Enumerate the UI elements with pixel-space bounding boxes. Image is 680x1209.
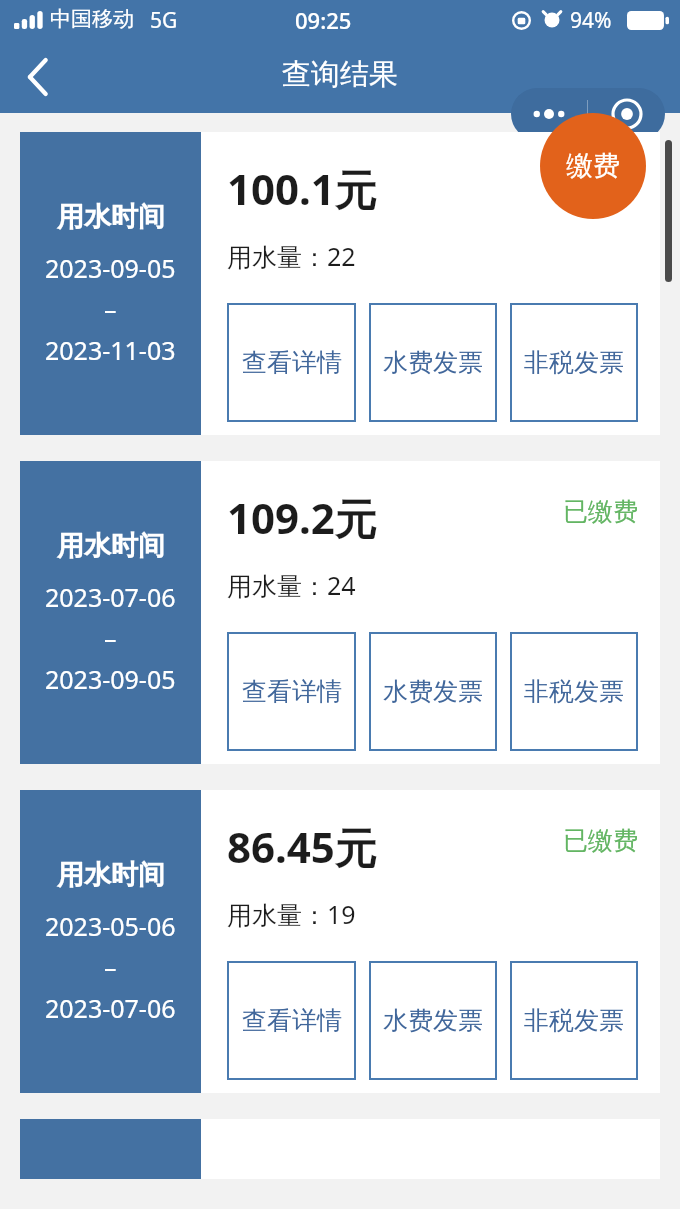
- staticText: 水费发票: [383, 1005, 483, 1036]
- staticText: 已缴费: [563, 167, 638, 198]
- button[interactable]: 用水时间: [20, 461, 660, 764]
- staticText: –: [104, 292, 117, 326]
- button[interactable]: 查看详情: [227, 632, 356, 751]
- staticText: 用水量：19: [227, 897, 356, 931]
- staticText: 查看详情: [242, 1005, 342, 1036]
- button[interactable]: 用水时间: [20, 790, 660, 1093]
- button[interactable]: Back: [10, 48, 68, 106]
- staticText: 已缴费: [563, 496, 638, 527]
- staticText: 缴费: [566, 149, 620, 183]
- staticText: 非税发票: [524, 347, 624, 378]
- staticText: 非税发票: [524, 676, 624, 707]
- staticText: –: [104, 950, 117, 984]
- staticText: 查看详情: [242, 347, 342, 378]
- button[interactable]: Close mini program: [588, 88, 665, 140]
- staticText: 100.1元: [227, 160, 377, 217]
- staticText: 水费发票: [383, 347, 483, 378]
- button[interactable]: 非税发票: [510, 961, 638, 1080]
- staticText: 109.2元: [227, 489, 377, 546]
- staticText: 2023-09-05: [45, 251, 176, 285]
- staticText: 2023-07-06: [45, 991, 176, 1025]
- button[interactable]: 查看详情: [227, 961, 356, 1080]
- staticText: 已缴费: [563, 825, 638, 856]
- staticText: 用水量：22: [227, 239, 356, 273]
- staticText: 2023-09-05: [45, 662, 176, 696]
- staticText: 查询结果: [282, 56, 398, 93]
- staticText: 中国移动: [50, 6, 134, 32]
- staticText: 水费发票: [383, 676, 483, 707]
- staticText: 用水时间: [57, 200, 165, 234]
- staticText: 2023-05-06: [45, 909, 176, 943]
- staticText: 用水量：24: [227, 568, 356, 602]
- button[interactable]: 非税发票: [510, 632, 638, 751]
- button[interactable]: 非税发票: [510, 303, 638, 422]
- other: Rotation lock: [512, 11, 531, 30]
- staticText: 查看详情: [242, 676, 342, 707]
- button[interactable]: 用水时间: [20, 132, 660, 435]
- button[interactable]: 缴费: [540, 113, 646, 219]
- button[interactable]: More: [511, 88, 587, 140]
- button[interactable]: 水费发票: [369, 632, 497, 751]
- staticText: –: [104, 621, 117, 655]
- button[interactable]: [20, 1119, 660, 1179]
- staticText: 用水时间: [57, 529, 165, 563]
- staticText: 09:25: [295, 5, 352, 35]
- other: Battery: [627, 11, 669, 30]
- staticText: 94%: [570, 6, 612, 35]
- button[interactable]: 水费发票: [369, 303, 497, 422]
- button[interactable]: 查看详情: [227, 303, 356, 422]
- staticText: 86.45元: [227, 818, 377, 875]
- staticText: 2023-11-03: [45, 333, 176, 367]
- staticText: 2023-07-06: [45, 580, 176, 614]
- other: Alarm: [542, 10, 562, 30]
- staticText: 非税发票: [524, 1005, 624, 1036]
- staticText: 5G: [150, 6, 178, 35]
- button[interactable]: 水费发票: [369, 961, 497, 1080]
- staticText: 用水时间: [57, 858, 165, 892]
